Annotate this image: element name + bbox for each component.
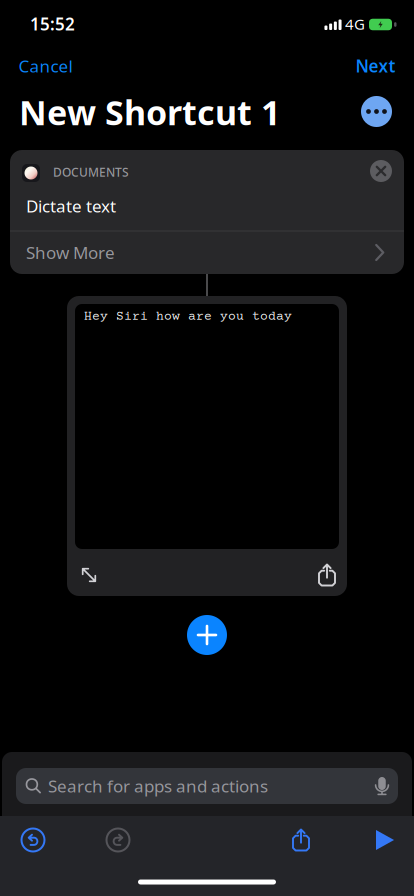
button[interactable]: Redo [102,824,134,856]
staticText: Search for apps and actions [48,775,268,797]
button[interactable]: Remove action [370,160,392,182]
staticText: New Shortcut 1 [19,89,280,135]
button[interactable]: Next [355,55,395,77]
staticText: 4G [345,14,365,34]
button[interactable]: Show More [10,231,404,274]
button[interactable]: Search for apps and actions [16,768,398,804]
staticText: Dictate text [26,195,116,217]
button[interactable]: Expand [74,560,104,590]
button[interactable]: Run shortcut [369,824,401,856]
staticText: 15:52 [30,13,75,35]
button[interactable]: Share [312,560,342,590]
staticText: Cancel [18,55,72,77]
staticText: Show More [26,241,115,264]
button[interactable]: Share [285,824,317,856]
staticText: DOCUMENTS [53,164,129,180]
button[interactable]: Cancel [18,55,72,77]
staticText: Next [355,55,395,77]
button[interactable]: More [361,96,392,127]
button[interactable]: Add action [187,615,227,655]
button[interactable]: Undo [17,824,49,856]
staticText: Hey Siri how are you today [84,310,292,324]
